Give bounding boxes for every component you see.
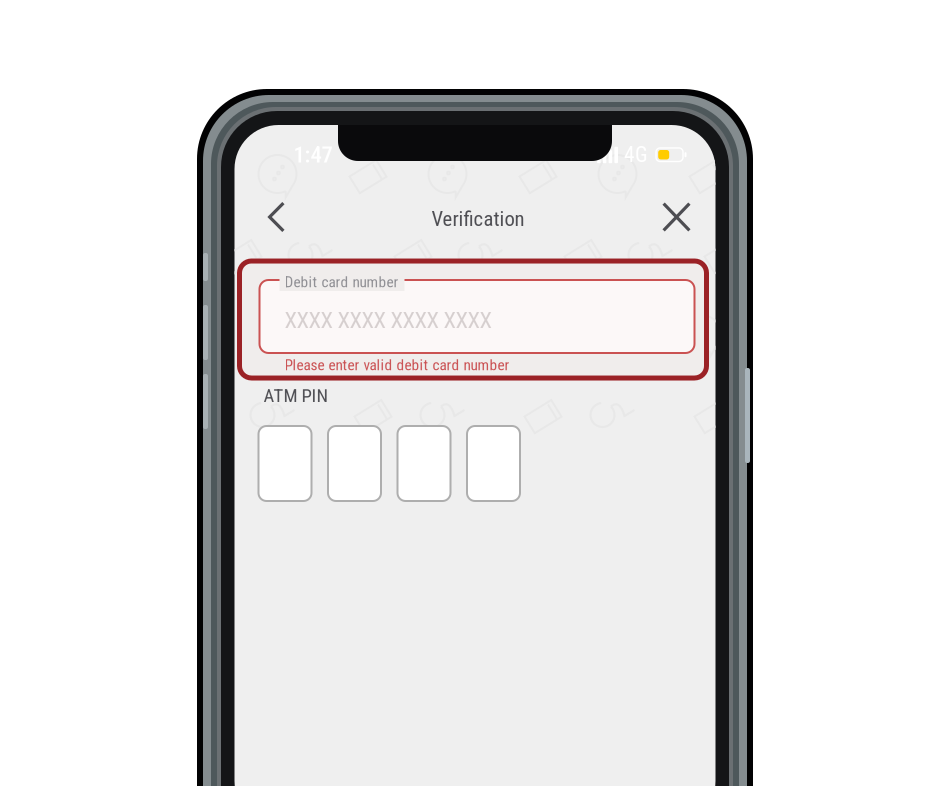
staticText: 4G <box>624 142 648 167</box>
button[interactable]: Back <box>252 193 300 241</box>
button[interactable]: PIN digit <box>328 426 381 501</box>
button[interactable]: PIN digit <box>258 426 311 501</box>
button[interactable]: Close <box>652 193 700 241</box>
staticText: Verification <box>431 207 524 231</box>
staticText: ATM PIN <box>263 385 328 407</box>
staticText: XXXX XXXX XXXX XXXX <box>284 307 491 334</box>
button[interactable]: PIN digit <box>467 426 520 501</box>
staticText: 1:47 <box>293 141 332 168</box>
staticText: Please enter valid debit card number <box>284 356 509 374</box>
staticText: Debit card number <box>284 273 398 291</box>
button[interactable]: PIN digit <box>397 426 450 501</box>
button[interactable]: XXXX XXXX XXXX XXXX <box>239 261 706 378</box>
